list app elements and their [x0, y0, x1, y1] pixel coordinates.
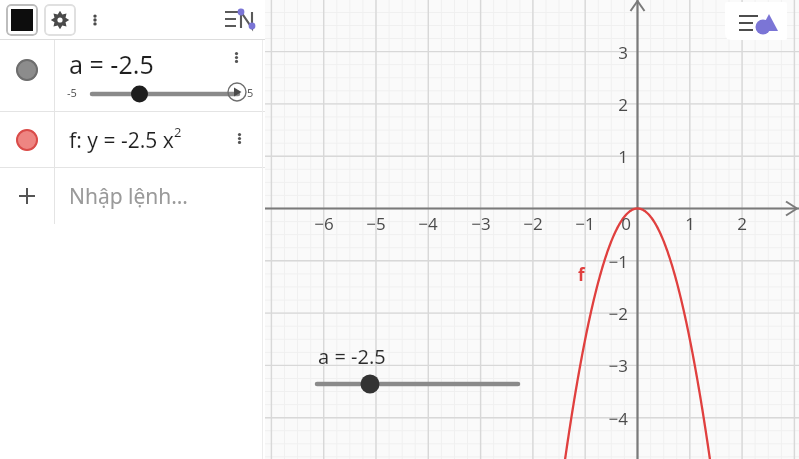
staticText: 0	[601, 212, 631, 235]
button[interactable]: Toggle visibility of a	[16, 59, 38, 81]
staticText: −1	[596, 250, 628, 273]
staticText: −2	[596, 302, 628, 325]
staticText: f	[578, 263, 585, 286]
button[interactable]: Nhập lệnh…	[0, 168, 265, 224]
staticText: −3	[459, 212, 503, 235]
staticText: −1	[563, 212, 607, 235]
staticText: 3	[596, 41, 628, 64]
staticText: 1	[596, 145, 628, 168]
button[interactable]: Animate a	[223, 78, 251, 106]
button[interactable]: Toggle visibility of f	[16, 129, 38, 151]
staticText: 2	[596, 93, 628, 116]
staticText: −4	[406, 212, 450, 235]
staticText: −2	[511, 212, 555, 235]
staticText: a = -2.5	[69, 47, 154, 81]
button[interactable]: Move tool	[6, 4, 38, 36]
staticText: −4	[596, 407, 628, 430]
staticText: −3	[596, 354, 628, 377]
staticText: 2	[720, 212, 764, 235]
staticText: f: y = -2.5 x	[69, 126, 174, 155]
button[interactable]: More options	[80, 5, 110, 35]
button[interactable]: Style bar	[725, 2, 787, 40]
staticText: Nhập lệnh…	[69, 182, 188, 211]
button[interactable]: Options for f	[227, 126, 251, 150]
button[interactable]: Options for a	[223, 44, 249, 70]
staticText: −6	[302, 212, 346, 235]
staticText: 5	[247, 85, 254, 100]
staticText: 1	[668, 212, 712, 235]
button[interactable]: Settings	[44, 4, 76, 36]
staticText: 2	[174, 123, 182, 141]
staticText: −5	[354, 212, 398, 235]
button[interactable]: Algebra view	[221, 3, 259, 37]
staticText: -5	[67, 85, 77, 100]
staticText: a = -2.5	[318, 343, 386, 370]
